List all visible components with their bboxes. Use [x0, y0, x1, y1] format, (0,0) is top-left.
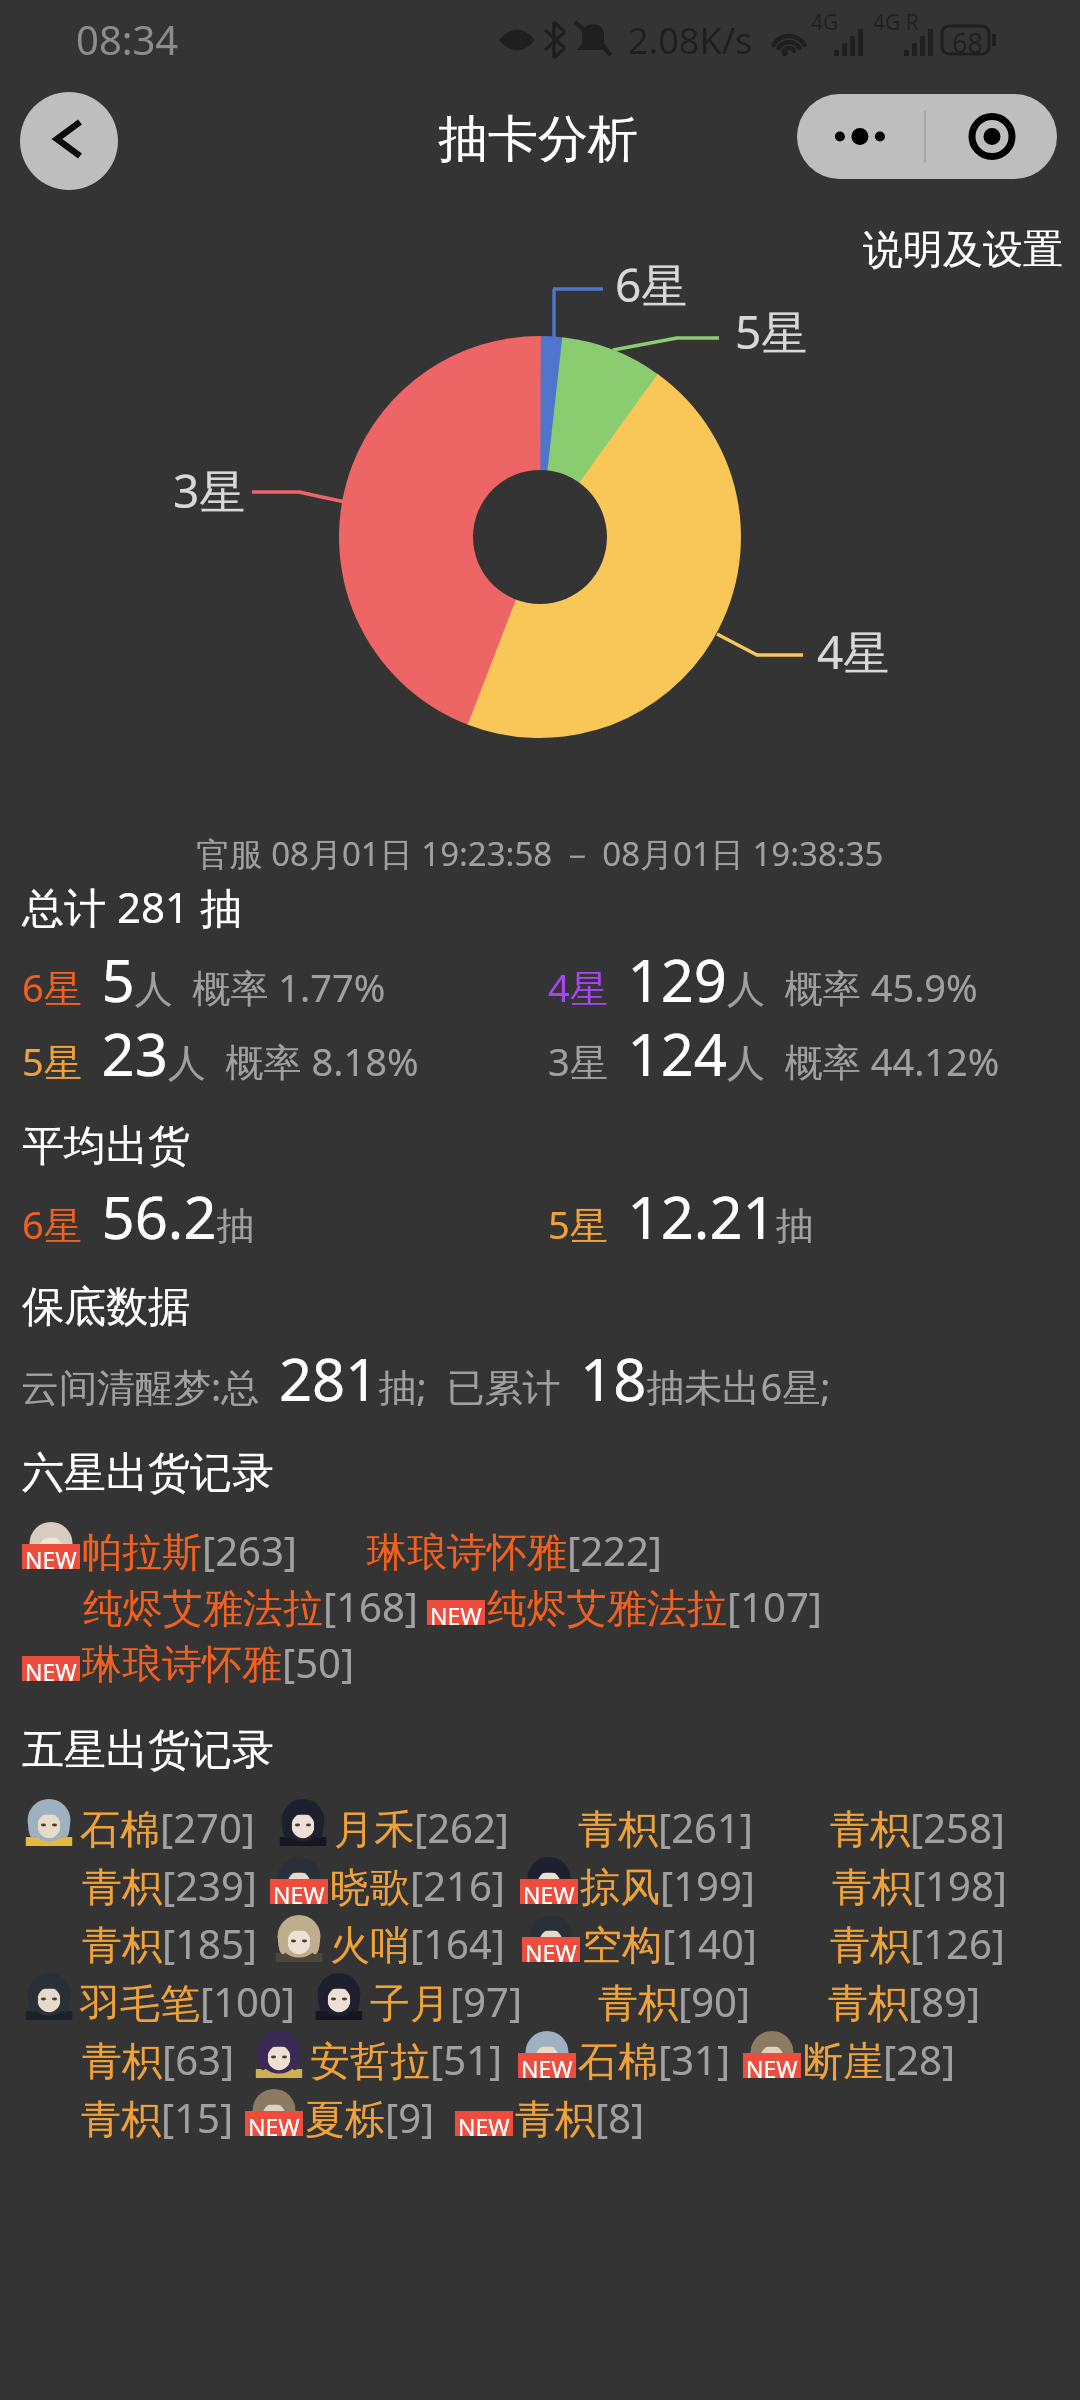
staticText: NEW [25, 1544, 77, 1569]
staticText: 平均出货 [22, 1120, 190, 1173]
staticText: 3星 124人 概率 44.12% [548, 1014, 1000, 1093]
button[interactable]: 帕拉斯[263] [82, 1523, 297, 1578]
button[interactable]: 青枳[261] [578, 1800, 753, 1855]
button[interactable]: 琳琅诗怀雅[222] [367, 1523, 662, 1578]
staticText: 6星 5人 概率 1.77% [22, 940, 386, 1019]
button[interactable]: 火哨[164] [330, 1916, 505, 1971]
button[interactable]: More options [797, 94, 1057, 179]
staticText: NEW [430, 1600, 482, 1625]
button[interactable]: 月禾[262] [334, 1800, 509, 1855]
staticText: 五星出货记录 [22, 1724, 274, 1777]
staticText: 抽卡分析 [438, 108, 638, 171]
button[interactable]: 琳琅诗怀雅[50] [82, 1635, 355, 1690]
button[interactable]: 说明及设置 [863, 224, 1063, 274]
staticText: 2.08K/s [628, 16, 753, 65]
staticText: 5星 23人 概率 8.18% [22, 1014, 419, 1093]
button[interactable]: 纯烬艾雅法拉[107] [487, 1579, 822, 1634]
staticText: 08:34 [76, 12, 179, 66]
button[interactable]: 青枳[258] [830, 1800, 1005, 1855]
button[interactable]: 空构[140] [582, 1916, 757, 1971]
button[interactable]: 青枳[15] [81, 2090, 234, 2145]
button[interactable]: Back [20, 92, 118, 190]
staticText: NEW [273, 1879, 325, 1904]
staticText: 5星 [735, 300, 808, 363]
button[interactable]: 石棉[31] [578, 2032, 731, 2087]
staticText: NEW [525, 1937, 577, 1962]
staticText: NEW [521, 2053, 573, 2078]
button[interactable]: 青枳[63] [82, 2032, 235, 2087]
button[interactable]: 夏栎[9] [305, 2090, 435, 2145]
staticText: 六星出货记录 [22, 1447, 274, 1500]
staticText: NEW [458, 2111, 510, 2136]
staticText: 4星 129人 概率 45.9% [548, 940, 978, 1019]
staticText: 3星 [173, 459, 246, 522]
button[interactable]: 青枳[89] [828, 1974, 981, 2029]
staticText: 总计 281 抽 [22, 878, 242, 935]
staticText: 云间清醒梦:总 281抽; 已累计 18抽未出6星; [21, 1339, 831, 1418]
staticText: 6星 56.2抽 [22, 1177, 255, 1256]
button[interactable]: 青枳[185] [82, 1916, 257, 1971]
button[interactable]: 纯烬艾雅法拉[168] [83, 1579, 418, 1634]
button[interactable]: 安哲拉[51] [310, 2032, 503, 2087]
button[interactable]: 青枳[198] [832, 1858, 1007, 1913]
button[interactable]: 子月[97] [370, 1974, 523, 2029]
button[interactable]: 青枳[8] [515, 2090, 645, 2145]
staticText: 4G [811, 8, 839, 37]
button[interactable]: 掠风[199] [580, 1858, 755, 1913]
button[interactable]: 晓歌[216] [330, 1858, 505, 1913]
staticText: 4G R [873, 8, 919, 37]
staticText: NEW [25, 1656, 77, 1681]
staticText: NEW [248, 2111, 300, 2136]
button[interactable]: 石棉[270] [80, 1800, 255, 1855]
staticText: NEW [746, 2053, 798, 2078]
button[interactable]: 断崖[28] [803, 2032, 956, 2087]
staticText: 6星 [615, 253, 688, 316]
staticText: 保底数据 [22, 1281, 190, 1334]
button[interactable]: 青枳[126] [830, 1916, 1005, 1971]
staticText: 4星 [817, 620, 890, 683]
staticText: 官服 08月01日 19:23:58 － 08月01日 19:38:35 [0, 831, 1080, 876]
staticText: 68 [952, 24, 983, 61]
button[interactable]: 青枳[90] [598, 1974, 751, 2029]
button[interactable]: 羽毛笔[100] [80, 1974, 295, 2029]
button[interactable]: 青枳[239] [82, 1858, 257, 1913]
staticText: 5星 12.21抽 [548, 1177, 814, 1256]
staticText: NEW [523, 1879, 575, 1904]
